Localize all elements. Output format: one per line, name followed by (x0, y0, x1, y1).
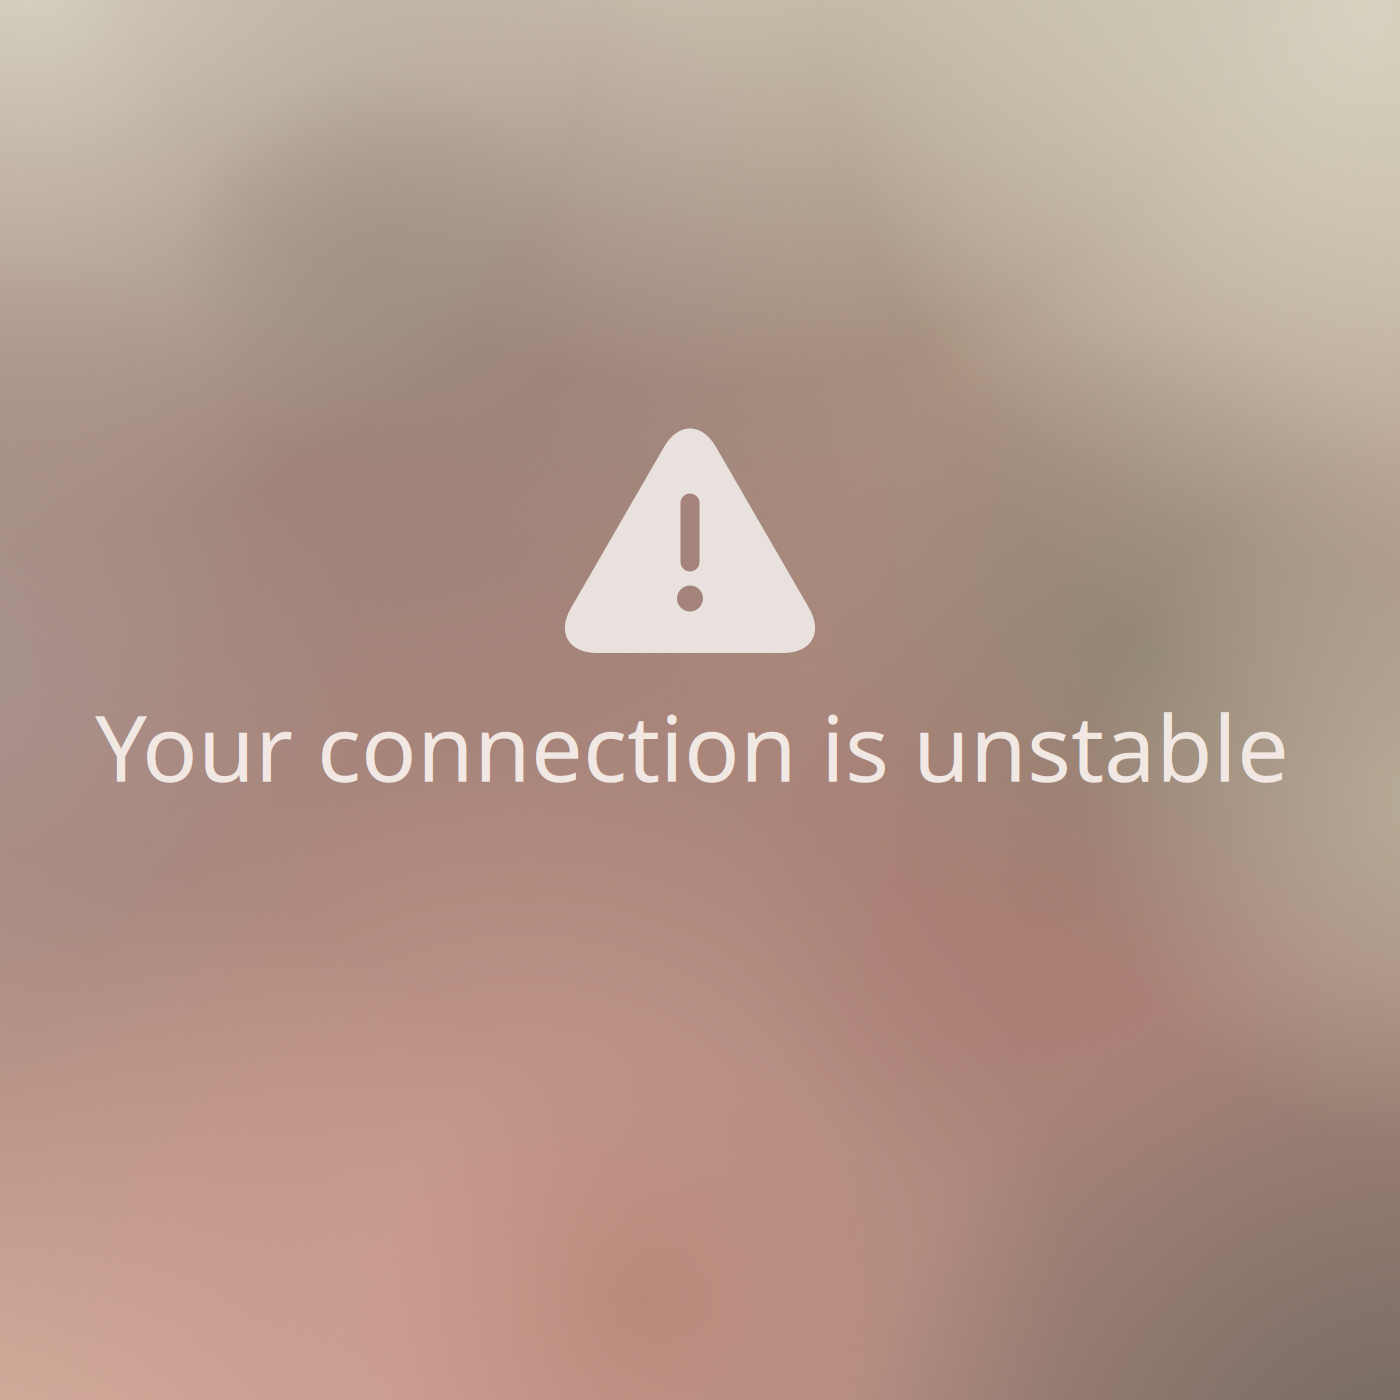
staticText: Your connection is unstable (95, 685, 1289, 807)
